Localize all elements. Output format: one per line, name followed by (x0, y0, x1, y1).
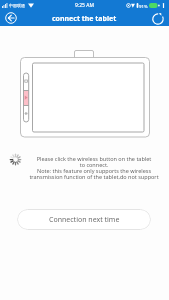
staticText: 9:25 AM (75, 2, 94, 9)
staticText: 中国联通 (9, 3, 25, 8)
staticText: Connection next time (49, 215, 120, 225)
button[interactable]: Connection next time (17, 209, 151, 230)
button[interactable]: Refresh (150, 11, 165, 26)
staticText: 91% (139, 3, 148, 9)
staticText: connect the tablet (52, 14, 117, 24)
staticText: Please click the wireless button on the … (29, 155, 159, 181)
button[interactable]: Back (2, 10, 19, 25)
